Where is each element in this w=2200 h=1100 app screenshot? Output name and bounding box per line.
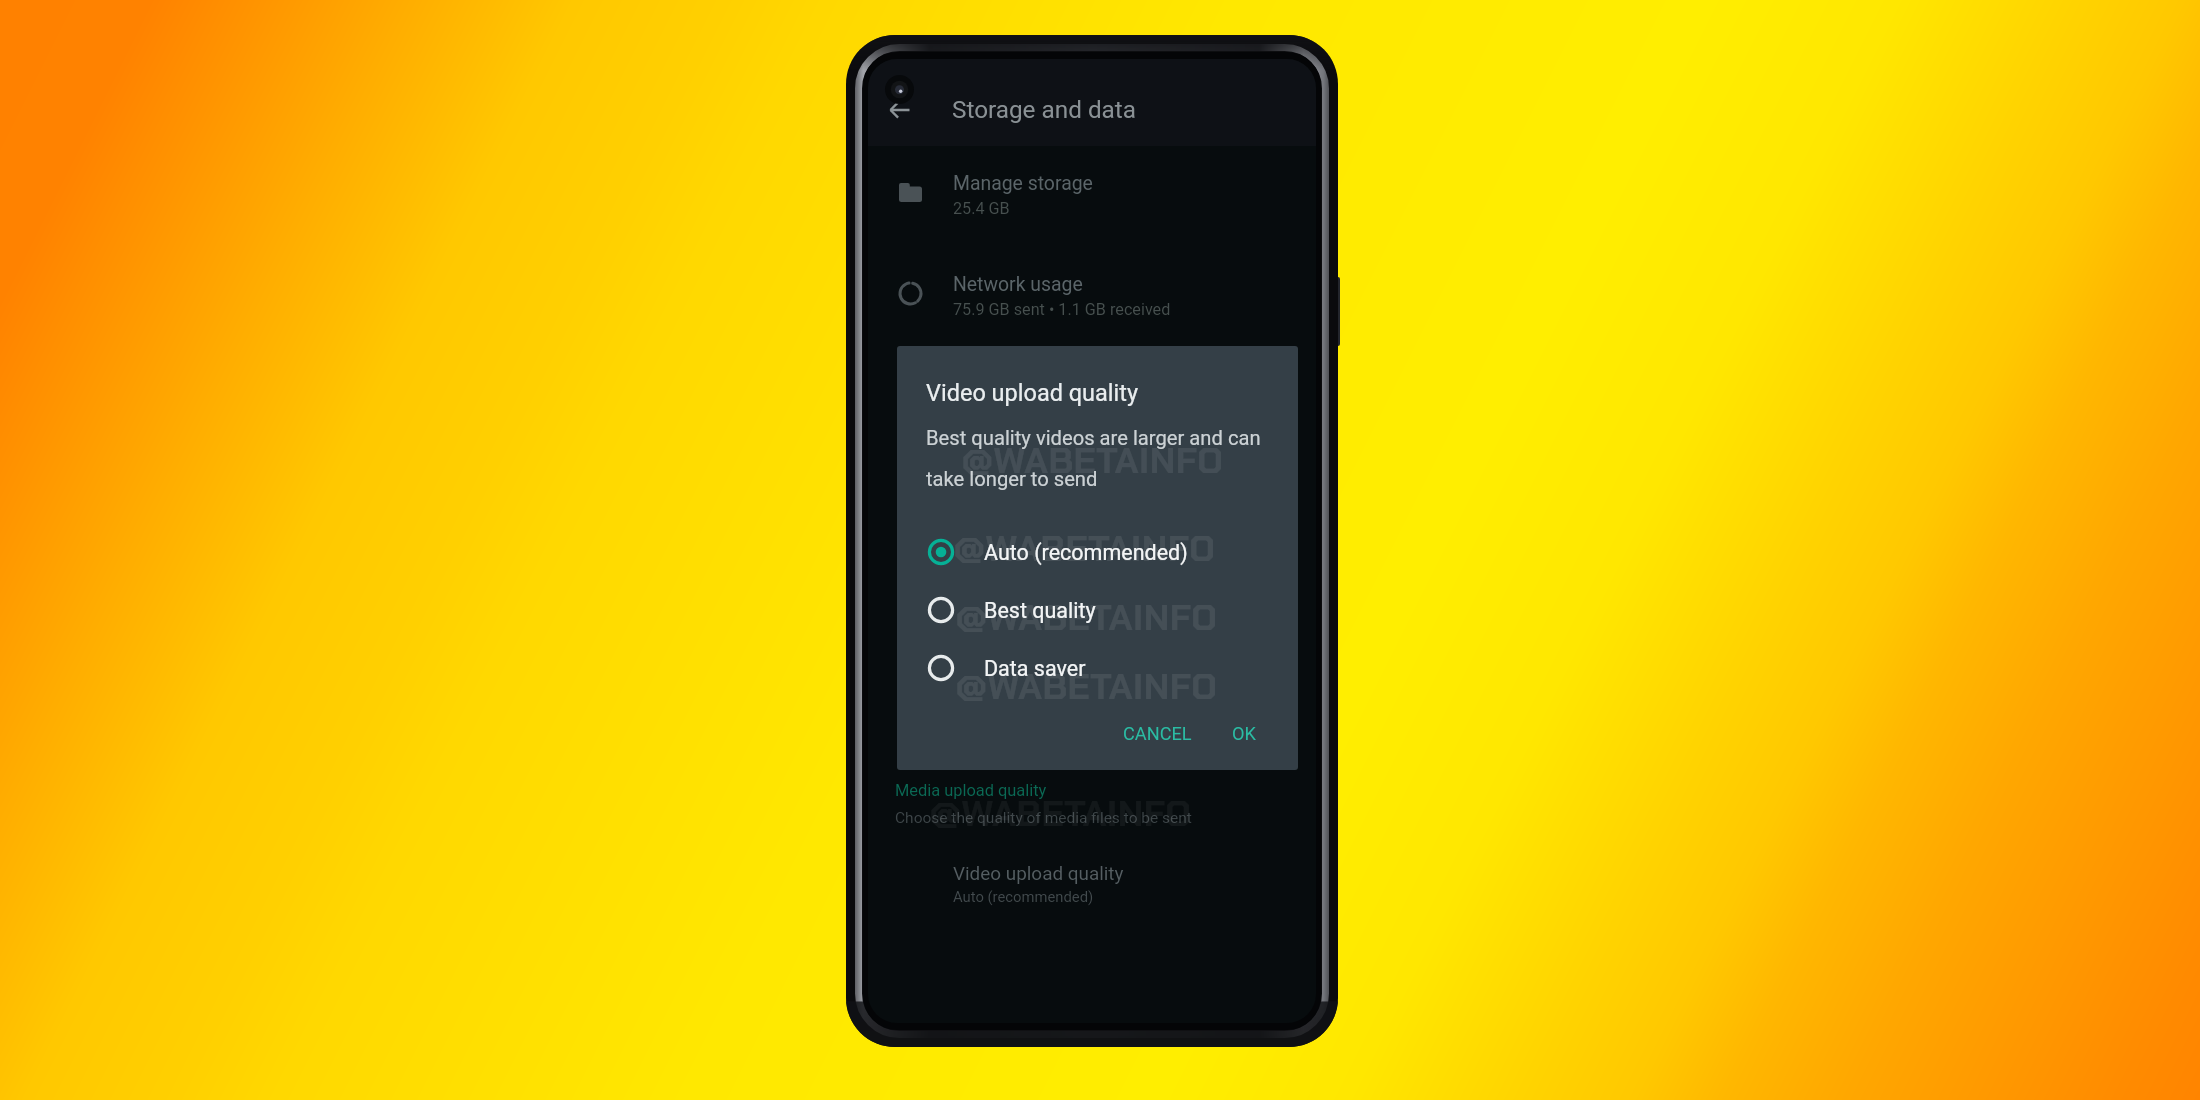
staticText: OK [1232,723,1256,744]
staticText: Network usage [953,273,1083,296]
staticText: @WABETAINFO [962,437,1224,485]
staticText: CANCEL [1123,723,1192,744]
button[interactable]: Best quality [897,581,1298,639]
staticText: 25.4 GB [953,199,1010,218]
button[interactable]: Auto (recommended) [897,523,1298,581]
staticText: Media upload quality [895,781,1047,800]
staticText: Best quality videos are larger and can t… [926,426,1276,491]
staticText: Manage storage [953,172,1093,195]
staticText: Data saver [984,656,1086,681]
staticText: Storage and data [952,95,1136,123]
staticText: Auto (recommended) [953,888,1094,905]
staticText: Auto (recommended) [984,540,1188,565]
staticText: @WABETAINFO [930,790,1192,838]
staticText: @WABETAINFO [954,525,1216,573]
button[interactable]: CANCEL [1108,714,1207,753]
staticText: Best quality [984,598,1096,623]
button[interactable]: Network usage [868,267,1316,329]
button[interactable]: Video upload quality [868,856,1316,915]
staticText: @WABETAINFO [956,663,1218,711]
button[interactable]: OK [1217,714,1271,753]
button[interactable]: Data saver [897,639,1298,697]
staticText: @WABETAINFO [956,594,1218,642]
button[interactable]: Manage storage [868,166,1316,228]
staticText: Choose the quality of media files to be … [895,809,1192,827]
staticText: 75.9 GB sent • 1.1 GB received [953,300,1171,319]
button[interactable]: Back [882,92,918,128]
staticText: Video upload quality [953,862,1124,884]
staticText: Video upload quality [926,379,1139,407]
